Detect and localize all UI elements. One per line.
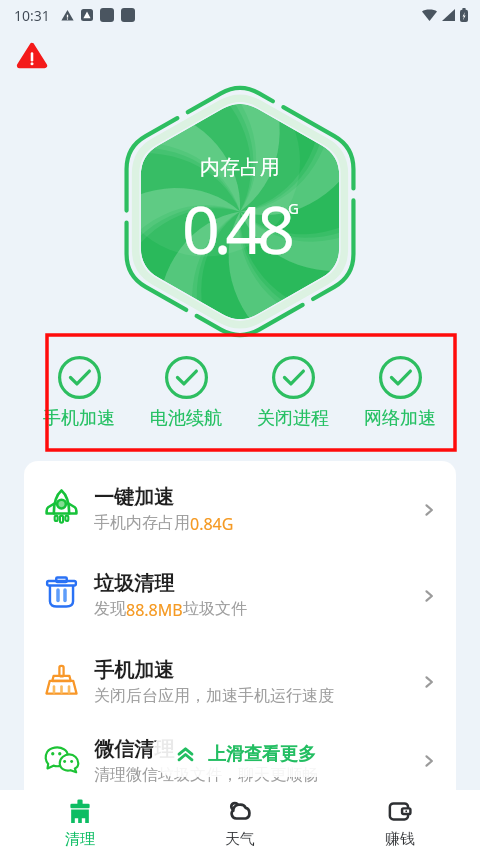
button[interactable]: 赚钱 — [360, 790, 440, 854]
staticText: 手机内存占用 — [94, 513, 190, 533]
staticText: 内存占用 — [200, 155, 280, 180]
button[interactable]: 网络加速 — [364, 334, 436, 430]
staticText: 垃圾文件 — [183, 599, 247, 619]
button[interactable]: 天气 — [200, 790, 280, 854]
staticText: 关闭后台应用，加速手机运行速度 — [94, 686, 334, 706]
button[interactable]: 上滑查看更多 — [152, 731, 340, 777]
staticText: 上滑查看更多 — [208, 743, 316, 766]
staticText: 0.84G — [190, 513, 234, 535]
staticText: 关闭进程 — [257, 407, 329, 430]
staticText: 一键加速 — [94, 485, 174, 510]
button[interactable]: 清理 — [40, 790, 120, 854]
staticText: 网络加速 — [364, 407, 436, 430]
staticText: 10:31 — [14, 6, 50, 25]
staticText: 清理微信垃圾文件，聊天更顺畅 — [94, 765, 318, 785]
staticText: 微信清理 — [94, 737, 174, 762]
staticText: 手机加速 — [43, 407, 115, 430]
button[interactable]: 电池续航 — [150, 334, 222, 430]
button[interactable]: 手机加速 — [43, 334, 115, 430]
staticText: 电池续航 — [150, 407, 222, 430]
staticText: 发现 — [94, 599, 126, 619]
button[interactable]: 关闭进程 — [257, 334, 329, 430]
button[interactable]: 手机加速 — [24, 639, 456, 725]
staticText: 清理 — [65, 830, 95, 849]
button[interactable]: Warning — [17, 41, 47, 71]
staticText: G — [288, 198, 299, 218]
staticText: 垃圾清理 — [94, 571, 174, 596]
button[interactable]: 垃圾清理 — [24, 553, 456, 639]
button[interactable]: 一键加速 — [24, 467, 456, 553]
button[interactable]: 微信清理 — [24, 725, 456, 790]
staticText: 赚钱 — [385, 830, 415, 849]
staticText: 手机加速 — [94, 658, 174, 683]
staticText: 88.8MB — [126, 599, 183, 621]
staticText: 天气 — [225, 830, 255, 849]
staticText: 0.48 — [182, 183, 289, 273]
